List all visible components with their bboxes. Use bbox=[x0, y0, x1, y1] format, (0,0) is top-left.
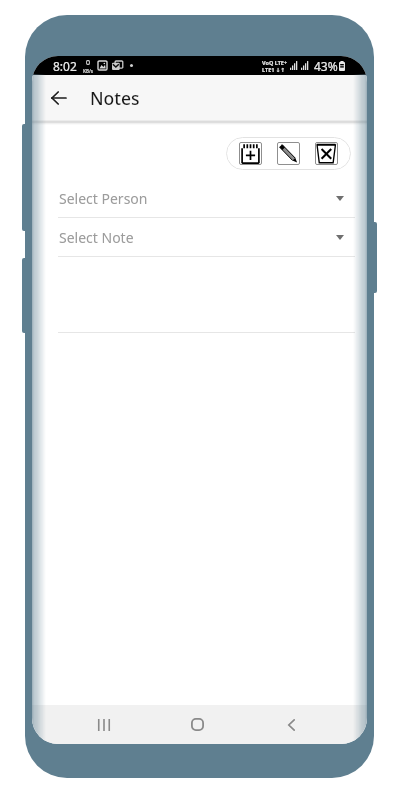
staticText: Select Note bbox=[59, 228, 134, 247]
button[interactable]: Home bbox=[173, 705, 221, 744]
button[interactable]: Edit note bbox=[277, 142, 300, 165]
staticText: Notes bbox=[90, 86, 140, 110]
button[interactable]: Back bbox=[267, 705, 315, 744]
button[interactable]: Delete note bbox=[315, 142, 338, 165]
button[interactable]: Recent apps bbox=[80, 705, 128, 744]
button[interactable]: Add note bbox=[239, 142, 262, 165]
staticText: KB/s bbox=[83, 68, 94, 74]
staticText: 43% bbox=[314, 58, 338, 74]
staticText: Select Person bbox=[59, 189, 148, 208]
staticText: LTE1 ↓↑ bbox=[262, 66, 286, 73]
staticText: VoQ LTE+ bbox=[262, 59, 288, 66]
button[interactable]: Back bbox=[37, 77, 79, 119]
button[interactable]: Select Person bbox=[32, 179, 367, 218]
staticText: 0 bbox=[86, 58, 91, 68]
staticText: 8:02 bbox=[53, 58, 77, 74]
button[interactable]: Select Note bbox=[32, 218, 367, 257]
